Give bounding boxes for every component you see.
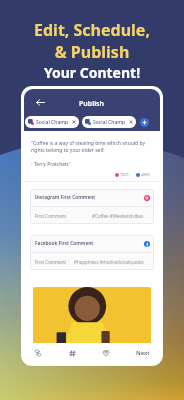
staticText: #Coffee #Weekendvibes [92, 213, 144, 219]
staticText: Next [136, 349, 150, 357]
button[interactable]: Location [100, 347, 112, 359]
staticText: First Comment [35, 259, 67, 265]
staticText: Facebook First Comment [35, 240, 144, 247]
staticText: Publish [79, 99, 105, 109]
button[interactable]: Hashtag [66, 347, 78, 359]
button[interactable]: Attach [32, 347, 44, 359]
staticText: & Publish [0, 41, 184, 63]
button[interactable]: Social Champ [25, 116, 79, 128]
staticText: Social Champ [36, 119, 69, 126]
staticText: "Coffee is a way of stealing time which … [31, 140, 145, 154]
button[interactable]: Back [35, 97, 46, 108]
button[interactable]: Social Champ [82, 116, 136, 128]
staticText: Social Champ [93, 119, 126, 126]
staticText: - Terry Pratchett' [31, 161, 70, 168]
button[interactable]: Instagram First Comment [30, 189, 154, 224]
staticText: #happiness #motivationalquotes [74, 259, 144, 265]
button[interactable]: Add account [140, 118, 149, 127]
staticText: Instagram First Comment [35, 194, 144, 201]
staticText: 1201 [120, 172, 130, 177]
button[interactable]: Facebook First Comment [30, 235, 154, 270]
staticText: 4891 [141, 172, 151, 177]
staticText: Your Content! [0, 63, 184, 82]
staticText: First Comment [35, 213, 67, 219]
staticText: Edit, Schedule, [0, 19, 184, 41]
button[interactable]: Next [134, 347, 152, 359]
